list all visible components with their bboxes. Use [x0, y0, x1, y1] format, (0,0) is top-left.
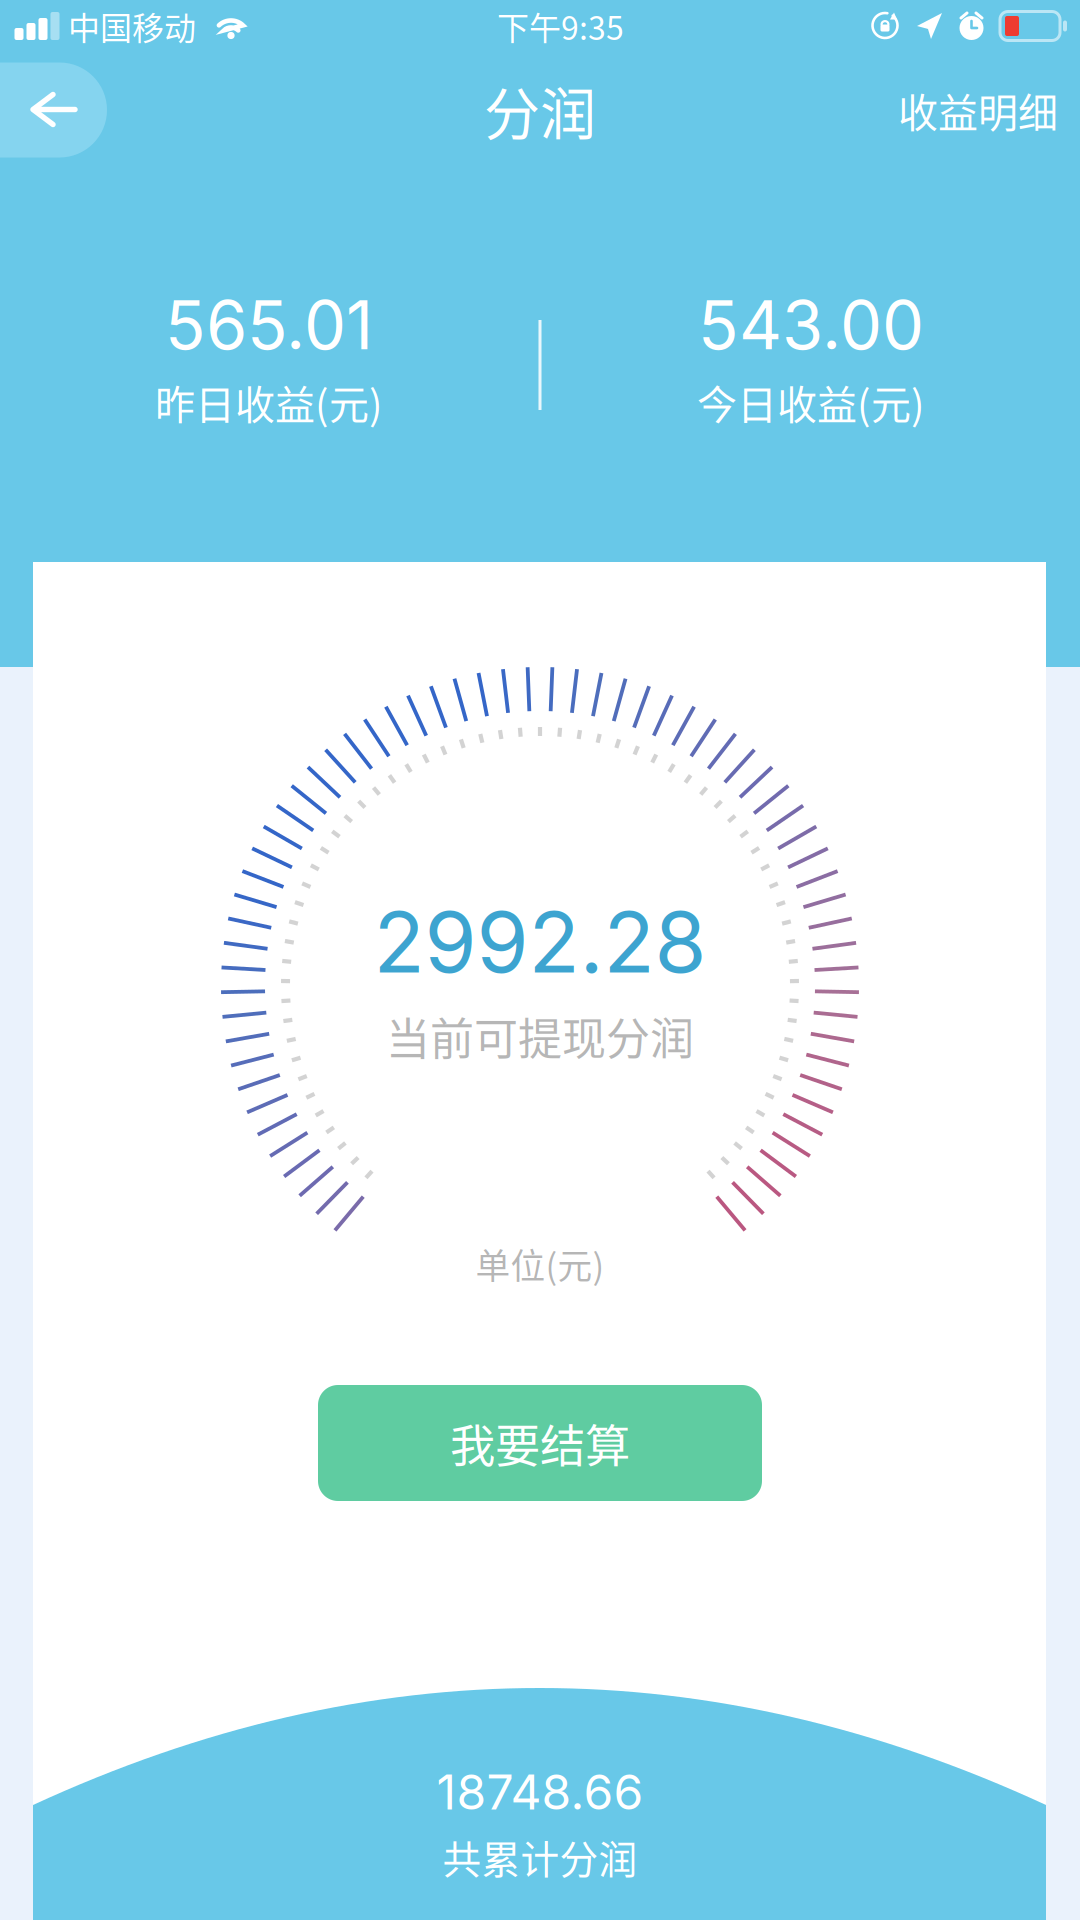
staticText: 我要结算	[450, 1410, 630, 1476]
staticText: 今日收益(元)	[697, 373, 925, 431]
staticText: 中国移动	[68, 3, 196, 49]
staticText: 共累计分润	[442, 1829, 637, 1885]
staticText: 下午9:35	[497, 3, 624, 49]
staticText: 2992.28	[373, 891, 706, 993]
staticText: 565.01	[165, 285, 373, 365]
staticText: 收益明细	[898, 81, 1058, 139]
staticText: 单位(元)	[475, 1239, 604, 1289]
button[interactable]: 收益明细	[888, 67, 1068, 153]
staticText: 当前可提现分润	[386, 1004, 694, 1068]
staticText: 543.00	[698, 285, 924, 365]
staticText: 分润	[484, 69, 596, 151]
button[interactable]: Back	[0, 62, 1080, 157]
button[interactable]: 我要结算	[318, 1385, 762, 1501]
staticText: 18748.66	[436, 1763, 643, 1821]
staticText: 昨日收益(元)	[155, 373, 383, 431]
